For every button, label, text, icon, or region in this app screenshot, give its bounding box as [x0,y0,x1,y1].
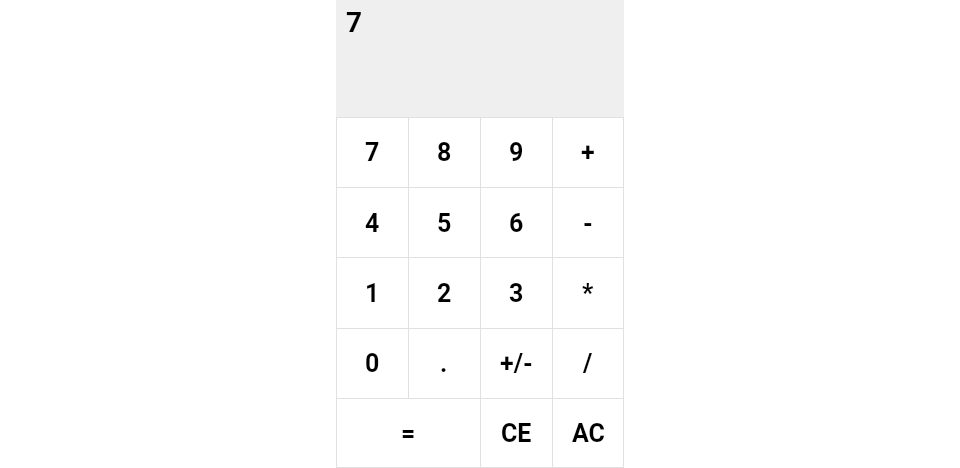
staticText: - [583,209,593,238]
staticText: 5 [437,209,452,238]
staticText: 1 [365,279,380,308]
button[interactable]: * [552,258,624,328]
button[interactable]: CE [480,398,552,468]
staticText: 9 [509,138,524,167]
button[interactable]: . [408,328,480,398]
staticText: AC [572,419,605,448]
staticText: + [581,138,595,167]
button[interactable]: 5 [408,188,480,258]
button[interactable]: AC [552,398,624,468]
staticText: 3 [509,279,524,308]
button[interactable]: 3 [480,258,552,328]
button[interactable]: 0 [336,328,408,398]
button[interactable]: +/- [480,328,552,398]
staticText: = [401,419,416,448]
staticText: * [582,279,594,308]
staticText: 7 [346,6,363,39]
button[interactable]: 7 [336,117,408,188]
staticText: 7 [365,138,380,167]
button[interactable]: 1 [336,258,408,328]
staticText: / [583,349,593,378]
staticText: . [440,349,448,378]
button[interactable]: / [552,328,624,398]
staticText: 6 [509,209,524,238]
staticText: 0 [365,349,380,378]
staticText: 2 [437,279,452,308]
button[interactable]: 8 [408,117,480,188]
button[interactable]: = [336,398,480,468]
staticText: 8 [437,138,452,167]
button[interactable]: 6 [480,188,552,258]
staticText: +/- [500,349,533,378]
button[interactable]: + [552,117,624,188]
button[interactable]: 9 [480,117,552,188]
staticText: CE [501,419,532,448]
staticText: 4 [365,209,380,238]
button[interactable]: 2 [408,258,480,328]
button[interactable]: 4 [336,188,408,258]
button[interactable]: - [552,188,624,258]
